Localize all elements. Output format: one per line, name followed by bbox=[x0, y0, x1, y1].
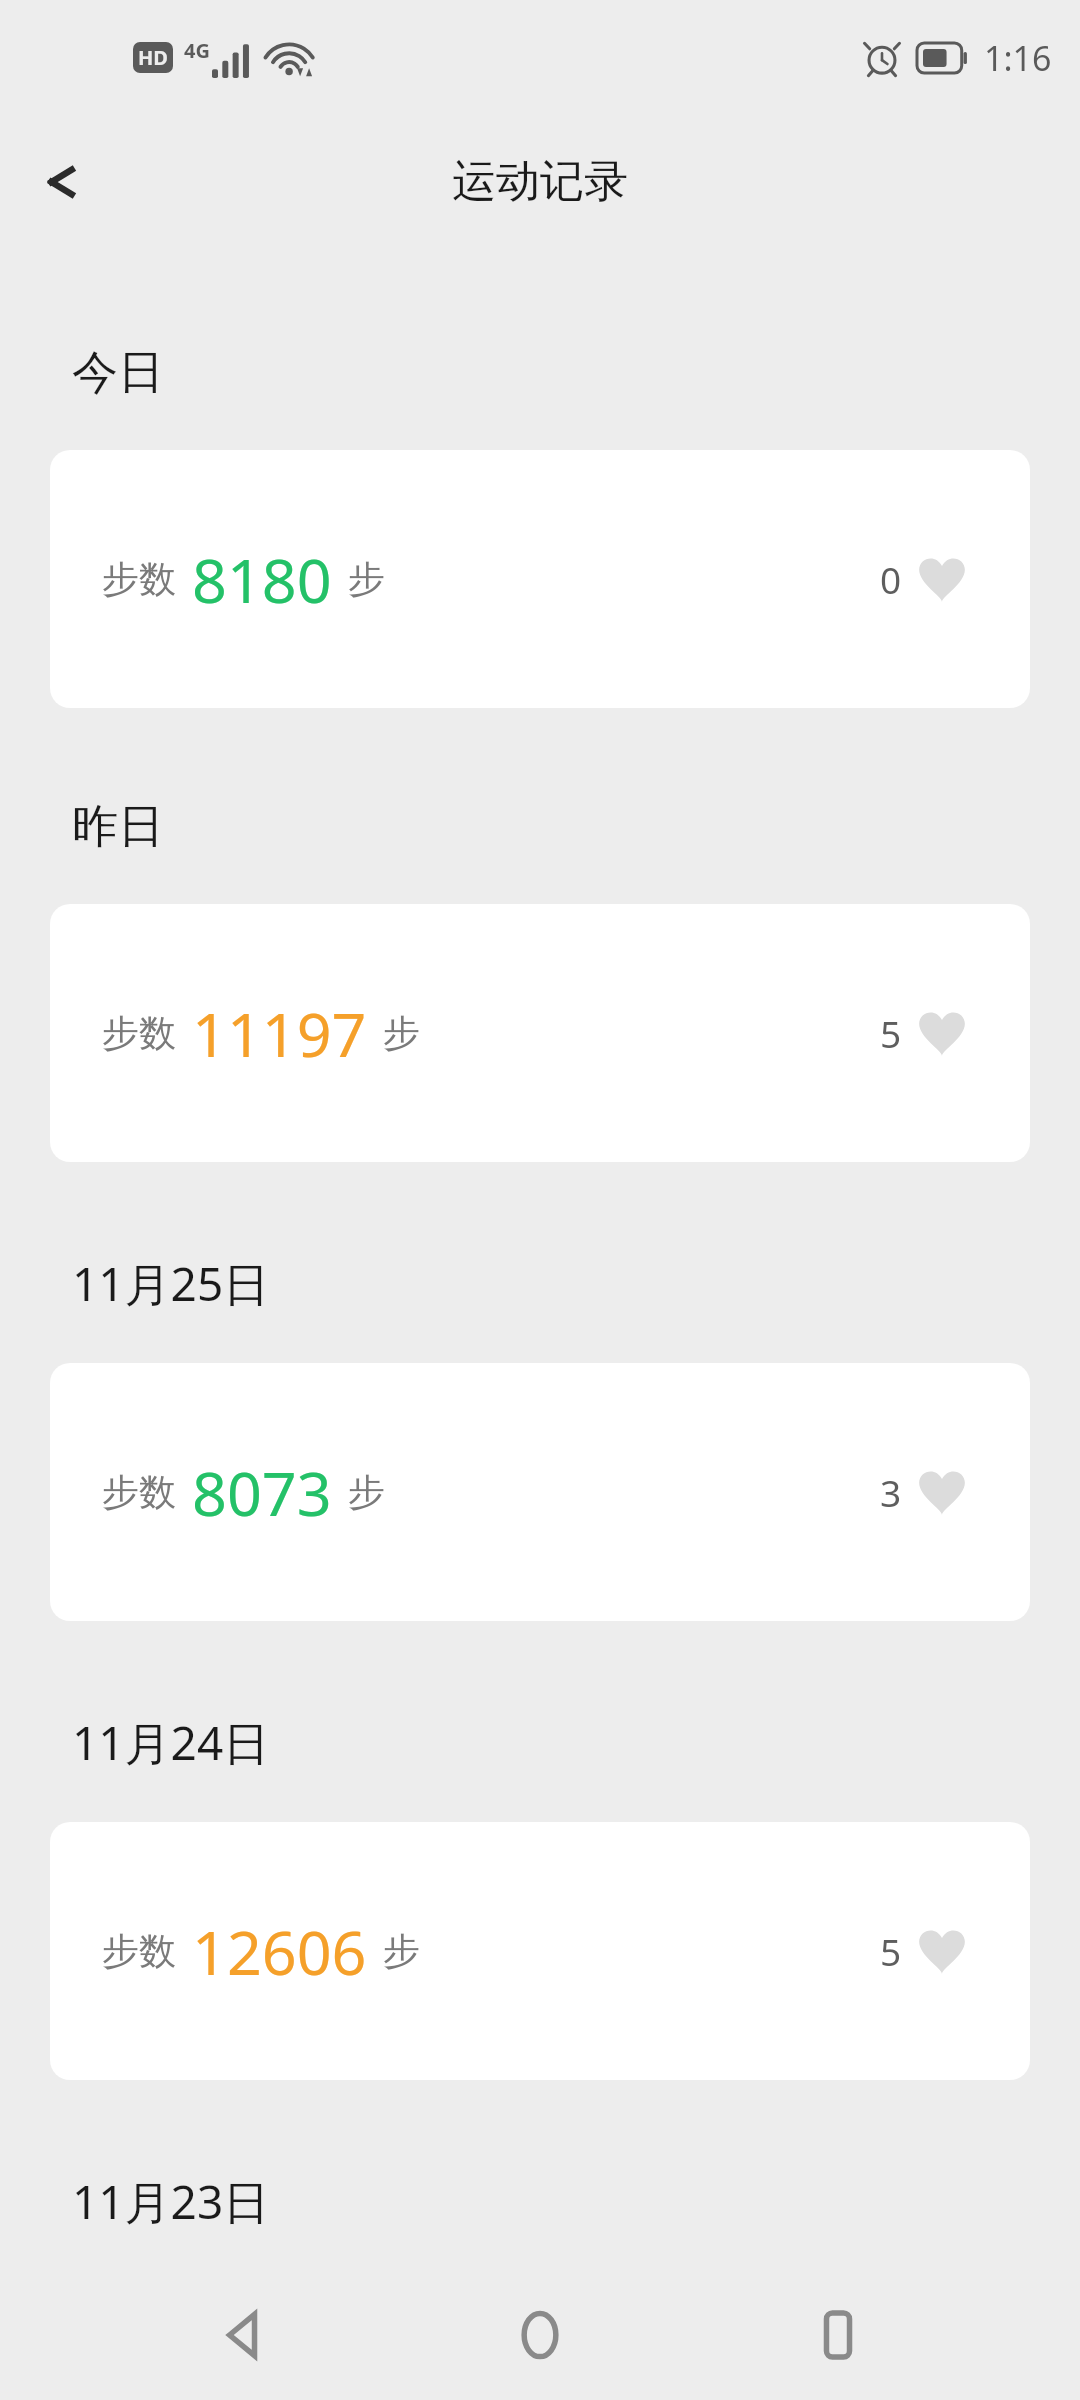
button[interactable] bbox=[50, 2281, 1030, 2341]
staticText: 5 bbox=[880, 1008, 902, 1058]
staticText: 11197 bbox=[192, 992, 367, 1075]
staticText: 4G bbox=[184, 37, 210, 64]
staticText: 步 bbox=[348, 1469, 385, 1516]
staticText: 12606 bbox=[192, 1910, 367, 1993]
button[interactable]: Home bbox=[485, 2280, 595, 2390]
staticText: 11月24日 bbox=[72, 1711, 270, 1774]
staticText: 11月25日 bbox=[72, 1252, 270, 1315]
staticText: 11月23日 bbox=[72, 2170, 270, 2233]
staticText: 步数 bbox=[102, 1469, 176, 1516]
staticText: 1:16 bbox=[984, 35, 1052, 81]
other: Likes bbox=[916, 556, 968, 602]
staticText: 0 bbox=[880, 554, 902, 604]
staticText: 运动记录 bbox=[452, 154, 628, 209]
staticText: 昨日 bbox=[72, 798, 164, 856]
staticText: 步数 bbox=[102, 556, 176, 603]
button[interactable]: Back bbox=[188, 2280, 298, 2390]
button[interactable]: 步数 bbox=[50, 1822, 1030, 2080]
button[interactable]: 步数 bbox=[50, 1363, 1030, 1621]
staticText: 5 bbox=[880, 1926, 902, 1976]
other: Likes bbox=[916, 1010, 968, 1056]
staticText: 步 bbox=[348, 556, 385, 603]
staticText: 3 bbox=[880, 1467, 902, 1517]
staticText: 步数 bbox=[102, 1010, 176, 1057]
button[interactable]: Recent apps bbox=[783, 2280, 893, 2390]
button[interactable]: Back bbox=[14, 134, 110, 230]
button[interactable]: 步数 bbox=[50, 450, 1030, 708]
staticText: 步 bbox=[383, 1928, 420, 1975]
staticText: 步数 bbox=[102, 1928, 176, 1975]
other: Likes bbox=[916, 1469, 968, 1515]
staticText: 步 bbox=[383, 1010, 420, 1057]
staticText: 8073 bbox=[192, 1451, 332, 1534]
staticText: 今日 bbox=[72, 344, 164, 402]
button[interactable]: 步数 bbox=[50, 904, 1030, 1162]
staticText: HD bbox=[138, 44, 168, 71]
staticText: 8180 bbox=[192, 538, 332, 621]
other: Likes bbox=[916, 1928, 968, 1974]
